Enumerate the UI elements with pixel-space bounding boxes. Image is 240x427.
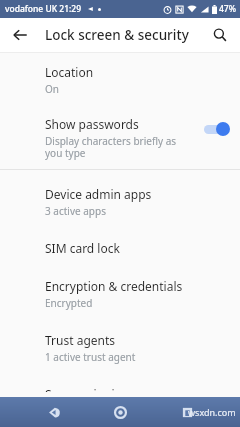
staticText: Encryption & credentials [45, 278, 183, 294]
button[interactable]: SIM card lock [0, 235, 240, 261]
staticText: SIM card lock [45, 240, 120, 256]
staticText: vodafone UK 21:29 [5, 3, 82, 15]
staticText: 47% [219, 3, 236, 15]
staticText: Show passwords [45, 116, 139, 132]
button[interactable]: Search [206, 21, 234, 49]
button[interactable]: Back [6, 21, 34, 49]
staticText: Location [45, 64, 94, 80]
staticText: wsxdn.com [188, 406, 236, 418]
staticText: On [45, 82, 59, 96]
button[interactable]: Show passwords toggle [202, 120, 232, 138]
staticText: Display characters briefly as you type [45, 134, 194, 160]
button[interactable]: Back [41, 399, 67, 425]
button[interactable]: Home [107, 399, 133, 425]
button[interactable]: Screen pinning [0, 381, 240, 397]
staticText: 1 active trust agent [45, 350, 136, 364]
button[interactable]: Location [0, 59, 240, 101]
button[interactable]: Encryption & credentials [0, 273, 240, 315]
staticText: 3 active apps [45, 204, 106, 218]
button[interactable]: Trust agents [0, 327, 240, 369]
button[interactable]: Recent apps [174, 399, 200, 425]
staticText: Trust agents [45, 332, 116, 348]
button[interactable]: Device admin apps [0, 181, 240, 223]
staticText: Screen pinning [45, 386, 130, 392]
button[interactable]: Show passwords [0, 111, 240, 165]
staticText: Lock screen & security [45, 26, 189, 44]
staticText: Device admin apps [45, 186, 152, 202]
staticText: Encrypted [45, 296, 93, 310]
